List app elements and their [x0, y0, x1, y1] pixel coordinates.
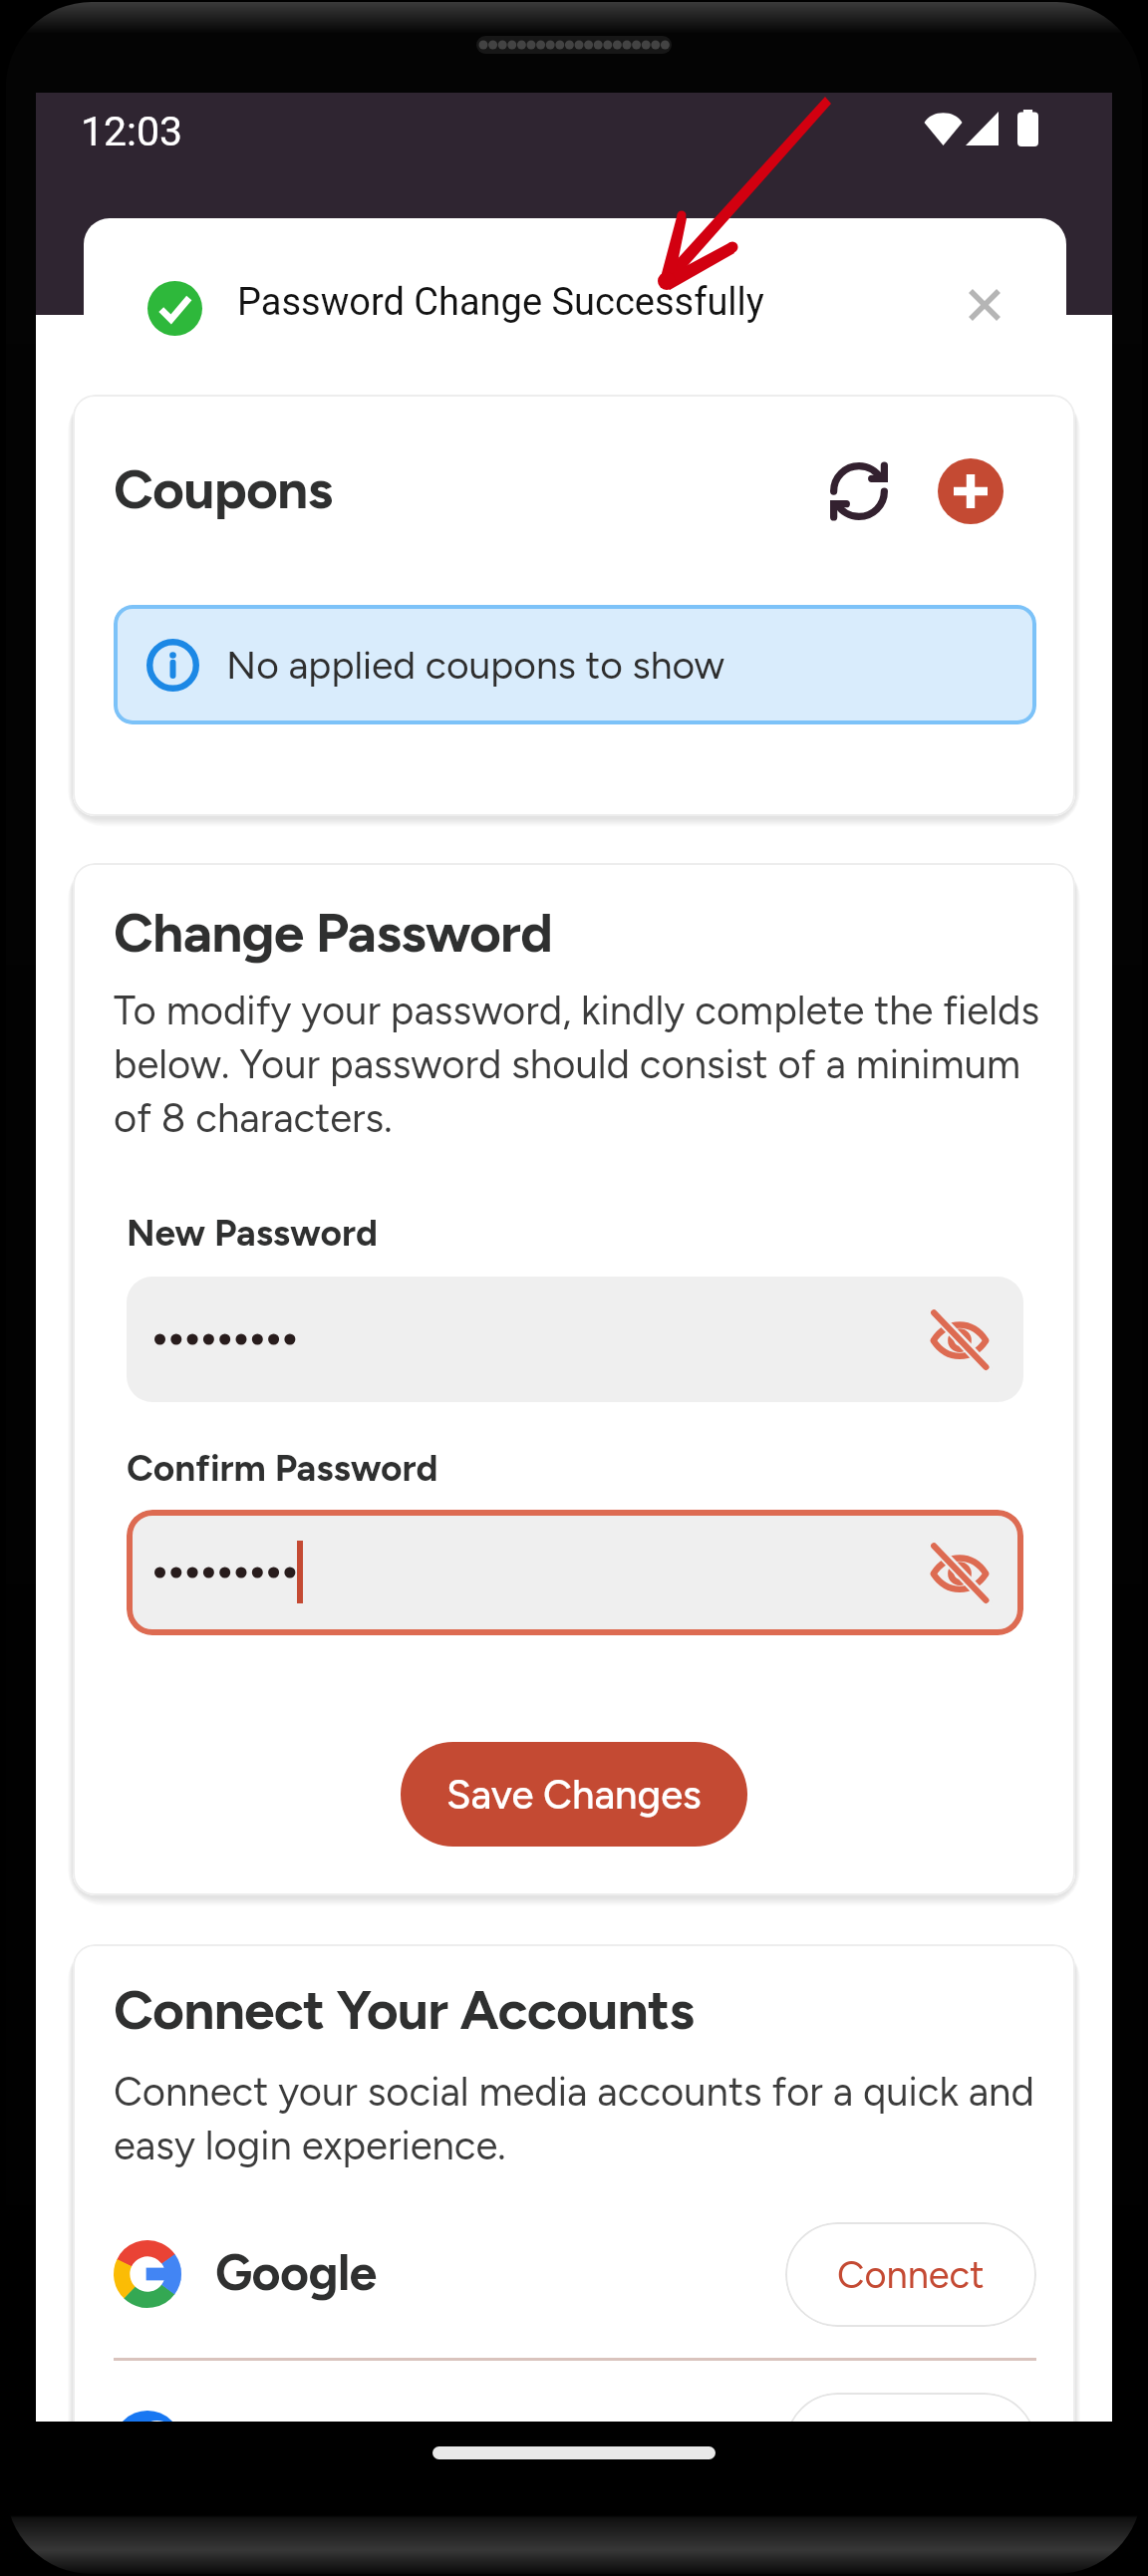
button[interactable]: Save Changes [401, 1742, 747, 1847]
staticText: New Password [127, 1211, 378, 1255]
button[interactable]: Toggle password visibility [923, 1304, 997, 1374]
button[interactable]: Add coupon [938, 458, 1004, 524]
button[interactable]: Toggle password visibility [127, 1277, 1023, 1402]
staticText: Connect [837, 2252, 985, 2298]
button[interactable]: Dismiss [951, 271, 1018, 339]
button[interactable]: Google [73, 2188, 1075, 2362]
staticText: Google [215, 2242, 377, 2302]
staticText: Confirm Password [127, 1446, 438, 1490]
staticText: 12:03 [81, 108, 183, 155]
button[interactable]: Toggle password visibility [923, 1538, 997, 1607]
staticText: Change Password [114, 900, 553, 966]
staticText: Connect your social media accounts for a… [114, 2068, 1060, 2169]
button[interactable]: Facebook [73, 2359, 1075, 2422]
staticText: Save Changes [446, 1771, 702, 1819]
button[interactable]: Refresh coupons [821, 453, 897, 529]
staticText: No applied coupons to show [226, 642, 725, 689]
button[interactable]: Connect [785, 2393, 1036, 2422]
button[interactable]: Connect [785, 2222, 1036, 2327]
staticText: Connect Your Accounts [114, 1977, 695, 2043]
staticText: Coupons [114, 456, 333, 522]
button[interactable]: Toggle password visibility [127, 1510, 1023, 1635]
button[interactable]: No applied coupons to show [114, 605, 1036, 724]
staticText: To modify your password, kindly complete… [114, 987, 1050, 1142]
staticText: Password Change Successfully [237, 280, 764, 325]
